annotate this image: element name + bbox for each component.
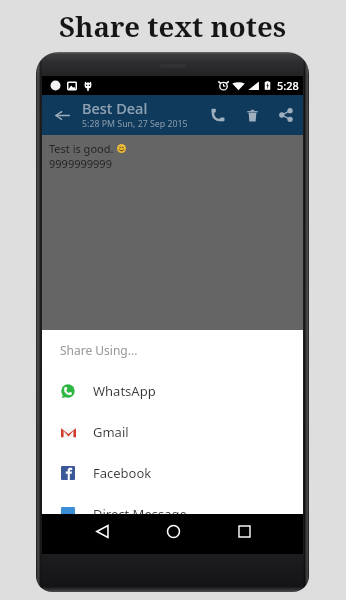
staticText: 5:28 PM Sun, 27 Sep 2015 [82,118,188,130]
staticText: 5:28 [277,78,299,93]
staticText: Gmail [93,423,129,441]
button[interactable]: Direct Message [42,493,303,514]
button[interactable]: Delete [239,102,265,128]
button[interactable]: WhatsApp [42,370,303,411]
button[interactable]: Recent apps [229,516,259,546]
button[interactable]: Back [87,516,117,546]
button[interactable]: Navigate up [48,101,76,129]
button[interactable]: Facebook [42,452,303,493]
button[interactable]: Share [273,102,299,128]
staticText: WhatsApp [93,382,156,400]
staticText: Test is good. [49,141,117,156]
staticText: 9999999999 [49,156,112,171]
staticText: Best Deal [82,98,148,118]
staticText: Facebook [93,464,152,482]
button[interactable]: Gmail [42,411,303,452]
staticText: Share text notes [59,7,287,45]
staticText: Share Using... [60,342,138,358]
button[interactable]: Call [205,102,231,128]
button[interactable]: Home [158,516,188,546]
staticText: Direct Message [93,505,187,514]
